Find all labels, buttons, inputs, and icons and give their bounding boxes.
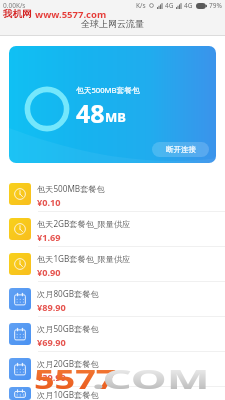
staticText: 断开连接 [166,145,196,154]
staticText: 5577 [34,360,117,396]
staticText: 0.00K/s [3,1,26,10]
staticText: 包天500MB套餐包 [76,85,140,96]
staticText: 48 [76,96,105,130]
staticText: ¥1.69 [37,231,61,244]
button[interactable]: 次月50GB套餐包 [0,317,225,352]
staticText: 次月20GB套餐包 [37,358,99,369]
button[interactable]: 次月80GB套餐包 [0,282,225,317]
staticText: 包天2GB套餐包_限量供应 [37,218,131,229]
staticText: MB [105,108,126,126]
staticText: ¥69.90 [37,336,66,349]
staticText: 次月80GB套餐包 [37,288,99,299]
staticText: 4G [184,1,193,10]
staticText: ¥89.90 [37,301,66,314]
staticText: 79% [209,1,222,10]
button[interactable]: 包天500MB套餐包 [0,177,225,212]
staticText: 次月10GB套餐包 [37,389,99,400]
staticText: ¥39.90 [37,371,66,384]
staticText: ¥0.10 [37,196,61,209]
staticText: ¥0.90 [37,266,61,279]
staticText: K/s [136,1,146,10]
button[interactable]: 次月20GB套餐包 [0,352,225,387]
staticText: 次月50GB套餐包 [37,323,99,334]
button[interactable]: 断开连接 [152,142,209,157]
button[interactable]: 包天1GB套餐包_限量供应 [0,247,225,282]
button[interactable]: 包天2GB套餐包_限量供应 [0,212,225,247]
staticText: 包天500MB套餐包 [37,183,105,194]
staticText: .COM [92,360,210,396]
staticText: www.5577.com [35,8,107,21]
button[interactable]: 次月10GB套餐包 [0,387,225,400]
staticText: 4G [165,1,174,10]
staticText: 我机网 [3,8,32,20]
staticText: 包天1GB套餐包_限量供应 [37,253,131,264]
staticText: 全球上网云流量 [81,18,144,29]
